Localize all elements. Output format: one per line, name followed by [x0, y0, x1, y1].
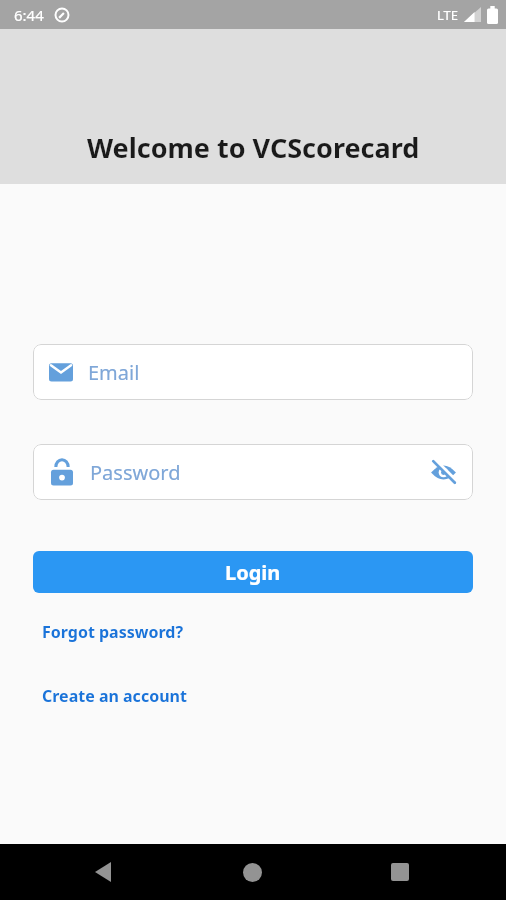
button[interactable]: Password: [33, 444, 473, 500]
button[interactable]: Forgot password?: [33, 617, 184, 647]
button[interactable]: Login: [33, 551, 473, 593]
button[interactable]: [380, 852, 420, 892]
staticText: 6:44: [14, 5, 44, 25]
staticText: Forgot password?: [42, 621, 184, 643]
button[interactable]: Create an account: [33, 681, 187, 711]
button[interactable]: Email: [33, 344, 473, 400]
staticText: Login: [225, 559, 281, 586]
staticText: Password: [90, 459, 181, 486]
button[interactable]: [232, 852, 272, 892]
staticText: Email: [88, 359, 140, 386]
staticText: Welcome to VCScorecard: [87, 129, 420, 166]
staticText: LTE: [437, 6, 459, 24]
button[interactable]: [83, 852, 123, 892]
staticText: Create an account: [42, 685, 187, 707]
